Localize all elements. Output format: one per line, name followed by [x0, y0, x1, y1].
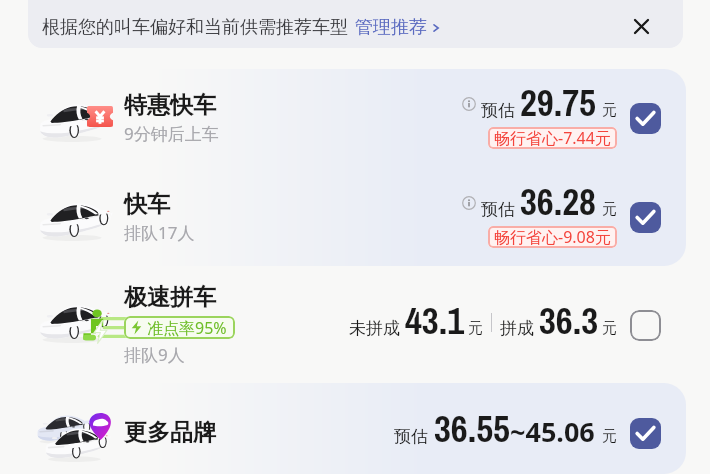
- staticText: 元: [602, 427, 617, 446]
- staticText: 36.3: [539, 296, 599, 346]
- staticText: 预估: [481, 199, 515, 220]
- staticText: 快车: [124, 190, 170, 219]
- staticText: 根据您的叫车偏好和当前供需推荐车型: [42, 16, 348, 39]
- staticText: 畅行省心-7.44元: [494, 127, 611, 149]
- button[interactable]: Close: [623, 8, 659, 44]
- staticText: 排队9人: [124, 343, 185, 366]
- staticText: 元: [468, 319, 483, 338]
- staticText: 预估: [481, 100, 515, 121]
- staticText: 畅行省心-9.08元: [494, 226, 611, 248]
- button[interactable]: Not selected: [630, 310, 661, 341]
- staticText: 元: [602, 101, 617, 120]
- staticText: 拼成: [500, 318, 534, 339]
- button[interactable]: [0, 383, 710, 474]
- button[interactable]: [0, 268, 710, 380]
- staticText: 预估: [394, 426, 428, 447]
- staticText: 元: [602, 200, 617, 219]
- staticText: 未拼成: [349, 318, 400, 339]
- button[interactable]: 根据您的叫车偏好和当前供需推荐车型: [28, 0, 683, 48]
- staticText: ~45.06: [510, 413, 595, 450]
- staticText: 管理推荐: [355, 16, 427, 39]
- button[interactable]: Selected: [630, 103, 661, 134]
- staticText: 极速拼车: [124, 283, 216, 312]
- staticText: 36.28: [520, 177, 596, 227]
- staticText: 排队17人: [124, 221, 195, 244]
- staticText: 特惠快车: [124, 91, 216, 120]
- staticText: 元: [602, 319, 617, 338]
- button[interactable]: [0, 168, 710, 265]
- staticText: 43.1: [405, 296, 465, 346]
- staticText: 36.55: [434, 404, 510, 454]
- staticText: 更多品牌: [124, 418, 216, 447]
- button[interactable]: Selected: [630, 418, 661, 449]
- staticText: 29.75: [520, 78, 596, 128]
- staticText: 准点率95%: [147, 317, 227, 339]
- staticText: 9分钟后上车: [124, 122, 219, 145]
- button[interactable]: [0, 69, 710, 166]
- button[interactable]: Selected: [630, 202, 661, 233]
